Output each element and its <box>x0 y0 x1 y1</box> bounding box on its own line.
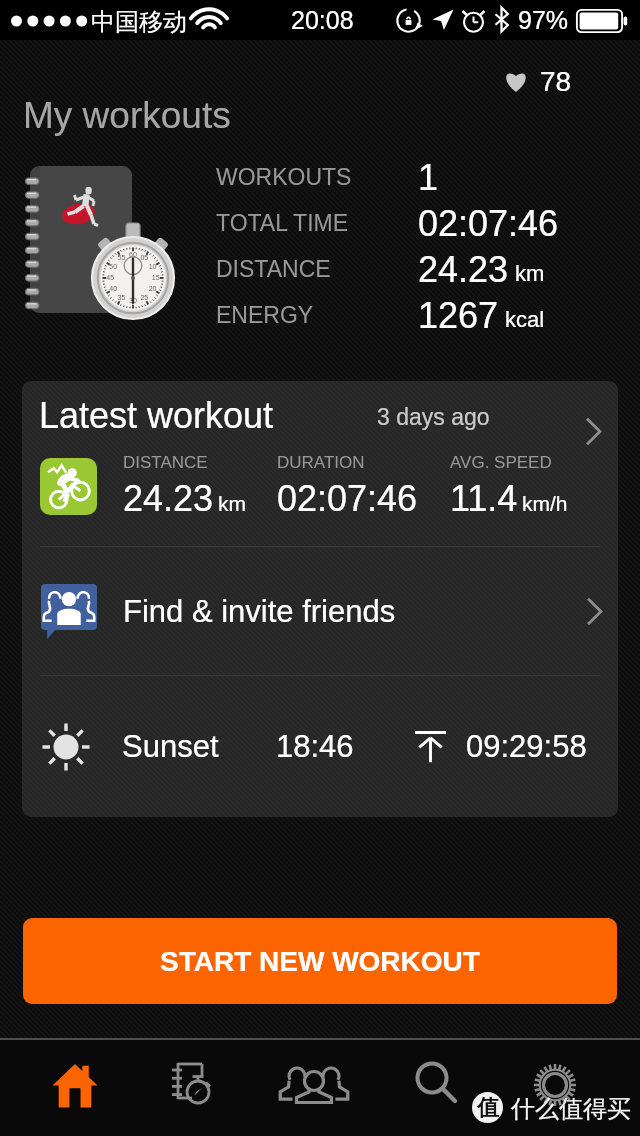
button[interactable]: Workouts <box>130 1040 252 1136</box>
button[interactable]: Sunset <box>22 676 618 817</box>
staticText: 20:08 <box>291 6 354 34</box>
staticText: 97% <box>518 6 569 34</box>
staticText: Latest workout <box>39 395 274 435</box>
button[interactable]: Home <box>20 1040 130 1136</box>
staticText: 1267 <box>418 295 499 335</box>
staticText: 09:29:58 <box>466 729 587 764</box>
button[interactable]: Search <box>382 1040 496 1136</box>
other: Open <box>585 417 602 446</box>
staticText: DISTANCE <box>123 453 208 472</box>
staticText: km/h <box>522 492 568 515</box>
button[interactable]: Settings <box>496 1040 614 1136</box>
staticText: Find & invite friends <box>123 594 396 629</box>
staticText: AVG. SPEED <box>450 453 552 472</box>
staticText: 中国移动 <box>91 7 187 37</box>
button[interactable]: START NEW WORKOUT <box>23 918 617 1004</box>
staticText: 11.4 <box>450 478 518 518</box>
staticText: 1 <box>418 157 439 197</box>
button[interactable]: Find & invite friends <box>22 547 618 675</box>
staticText: START NEW WORKOUT <box>160 946 480 977</box>
button[interactable]: Friends <box>256 1040 372 1136</box>
staticText: DURATION <box>277 453 365 472</box>
staticText: 24.23 <box>418 249 509 289</box>
staticText: 02:07:46 <box>418 203 559 243</box>
staticText: 3 days ago <box>377 404 490 430</box>
staticText: My workouts <box>23 95 231 136</box>
button[interactable]: Latest workout <box>22 381 618 546</box>
staticText: WORKOUTS <box>216 164 352 190</box>
staticText: 18:46 <box>276 729 354 764</box>
staticText: 值 <box>477 1094 499 1122</box>
other: Open <box>586 597 603 626</box>
staticText: DISTANCE <box>216 256 331 282</box>
staticText: TOTAL TIME <box>216 210 349 236</box>
staticText: 什么值得买 <box>511 1094 631 1124</box>
staticText: ENERGY <box>216 302 314 328</box>
staticText: km <box>515 261 545 286</box>
staticText: 24.23 <box>123 478 214 518</box>
staticText: km <box>218 492 246 515</box>
staticText: Sunset <box>122 729 219 764</box>
staticText: kcal <box>505 307 545 332</box>
staticText: 02:07:46 <box>277 478 418 518</box>
staticText: 78 <box>540 66 572 97</box>
